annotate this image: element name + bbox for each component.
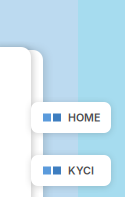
staticText: KYCI <box>68 164 94 177</box>
staticText: HOME <box>68 111 100 124</box>
button[interactable]: HOME <box>31 102 111 133</box>
button[interactable]: KYCI <box>31 155 111 186</box>
